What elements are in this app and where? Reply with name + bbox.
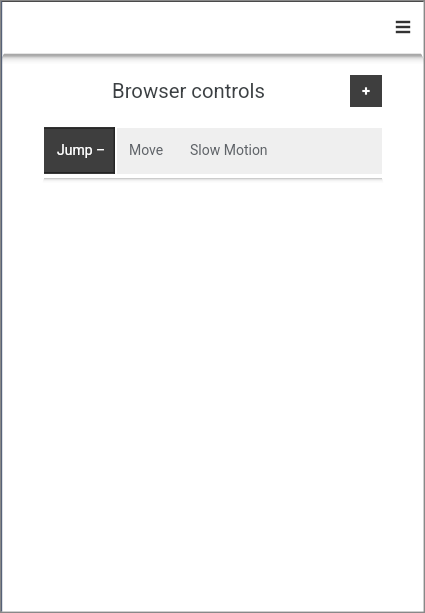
button[interactable]: Slow Motion bbox=[178, 128, 280, 174]
button[interactable]: Menu bbox=[387, 11, 418, 42]
staticText: Move bbox=[129, 142, 164, 158]
button[interactable]: Move bbox=[116, 128, 177, 174]
staticText: Browser controls bbox=[112, 79, 266, 103]
staticText: Slow Motion bbox=[190, 142, 268, 158]
button[interactable]: Jump – bbox=[44, 127, 115, 174]
button[interactable]: Add bbox=[350, 75, 382, 107]
staticText: Jump – bbox=[57, 142, 106, 158]
